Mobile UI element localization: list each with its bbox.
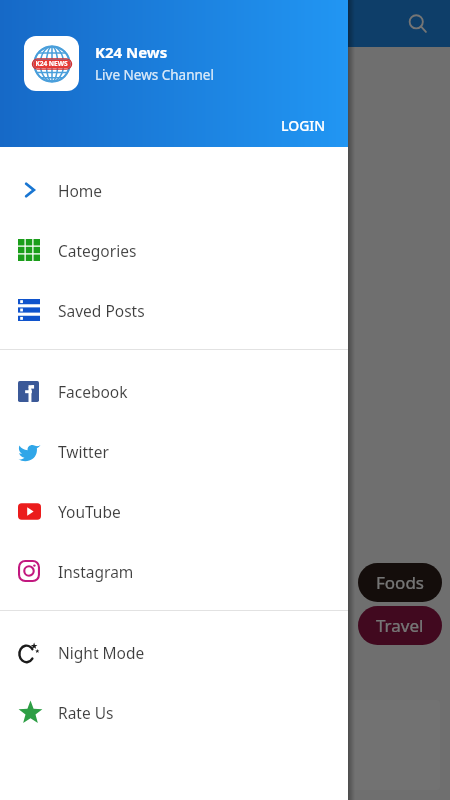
staticText: YouTube xyxy=(58,501,121,522)
button[interactable]: Night Mode xyxy=(0,622,348,682)
button[interactable]: Facebook xyxy=(0,361,348,421)
staticText: Live News Channel xyxy=(95,66,214,84)
staticText: Night Mode xyxy=(58,642,145,663)
staticText: Saved Posts xyxy=(58,300,145,321)
staticText: Travel xyxy=(376,614,424,637)
button[interactable]: YouTube xyxy=(0,481,348,541)
button[interactable]: Search xyxy=(396,2,440,46)
button[interactable]: Foods xyxy=(358,563,442,602)
button[interactable]: Rate Us xyxy=(0,682,348,742)
staticText: Categories xyxy=(58,240,137,261)
staticText: Home xyxy=(58,180,103,201)
staticText: Rate Us xyxy=(58,702,114,723)
staticText: Instagram xyxy=(58,561,134,582)
button[interactable]: LOGIN xyxy=(265,110,342,141)
staticText: K24 NEWS xyxy=(24,59,79,68)
button[interactable]: Instagram xyxy=(0,541,348,601)
staticText: LOGIN xyxy=(281,116,326,135)
button[interactable]: Travel xyxy=(358,606,442,645)
button[interactable]: Categories xyxy=(0,220,348,280)
button[interactable]: Home xyxy=(0,160,348,220)
staticText: Facebook xyxy=(58,381,128,402)
button[interactable]: Saved Posts xyxy=(0,280,348,340)
staticText: Twitter xyxy=(58,441,109,462)
button[interactable]: Twitter xyxy=(0,421,348,481)
staticText: Foods xyxy=(376,571,424,594)
staticText: K24 News xyxy=(95,42,168,62)
